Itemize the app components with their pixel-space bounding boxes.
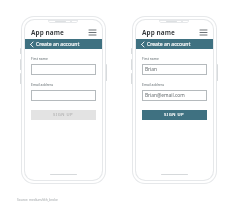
other: Back [141,42,144,47]
button[interactable]: Brian@email.com [142,90,207,101]
staticText: Create an account [147,41,191,48]
button[interactable]: Brian [142,64,207,75]
staticText: Email address [142,82,165,87]
button[interactable]: Menu [88,28,97,37]
button[interactable]: SIGN UP [31,110,96,120]
staticText: Create an account [36,41,80,48]
button[interactable]: Menu [199,28,208,37]
button[interactable]: Back [136,39,213,49]
button[interactable]: Back [25,39,102,49]
button[interactable] [31,90,96,101]
staticText: Brian [145,66,157,73]
staticText: App name [31,28,64,37]
staticText: SIGN UP [164,112,185,118]
button[interactable]: App name [136,25,213,39]
staticText: First name [142,56,159,61]
staticText: First name [31,56,48,61]
button[interactable]: SIGN UP [142,110,207,120]
button[interactable]: App name [25,25,102,39]
staticText: Email address [31,82,54,87]
other: Back [30,42,33,47]
staticText: App name [142,28,175,37]
staticText: Source: medium/dth_broke [17,198,58,202]
staticText: Brian@email.com [145,92,185,99]
button[interactable] [31,64,96,75]
staticText: SIGN UP [53,112,74,118]
